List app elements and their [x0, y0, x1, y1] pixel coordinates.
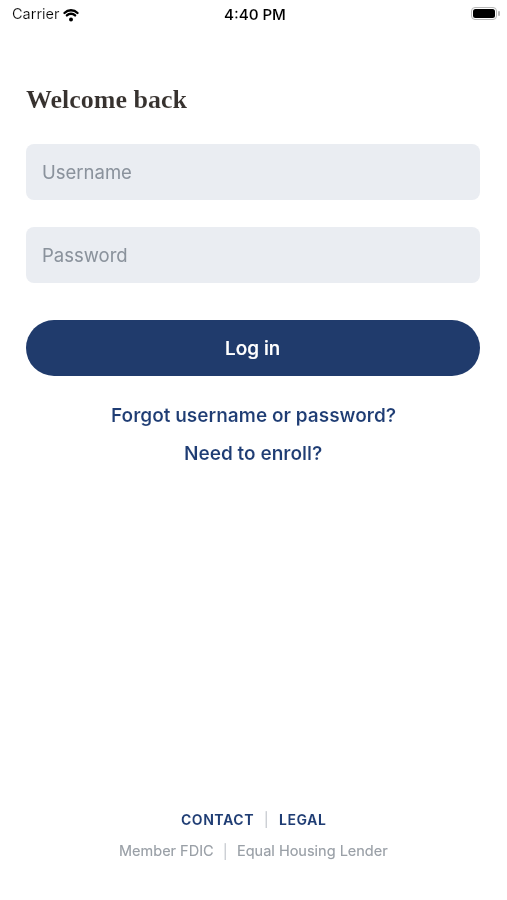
button[interactable]: Forgot username or password? [111, 404, 397, 427]
staticText: | [223, 843, 228, 860]
button[interactable]: CONTACT [181, 811, 254, 828]
staticText: Log in [225, 337, 281, 360]
staticText: Carrier [12, 5, 60, 23]
staticText: Username [42, 161, 132, 183]
staticText: | [264, 811, 269, 828]
staticText: LEGAL [279, 811, 327, 828]
staticText: 4:40 PM [224, 5, 286, 23]
staticText: Need to enroll? [184, 442, 323, 465]
staticText: Welcome back [26, 85, 188, 114]
button[interactable]: LEGAL [279, 811, 327, 828]
button[interactable]: Need to enroll? [184, 442, 323, 465]
staticText: CONTACT [181, 811, 254, 828]
staticText: Equal Housing Lender [237, 842, 388, 860]
button[interactable]: Password [26, 227, 480, 283]
button[interactable]: Username [26, 144, 480, 200]
staticText: Password [42, 244, 128, 266]
button[interactable]: Log in [26, 320, 480, 376]
staticText: Member FDIC [119, 842, 214, 860]
staticText: Forgot username or password? [111, 404, 397, 427]
